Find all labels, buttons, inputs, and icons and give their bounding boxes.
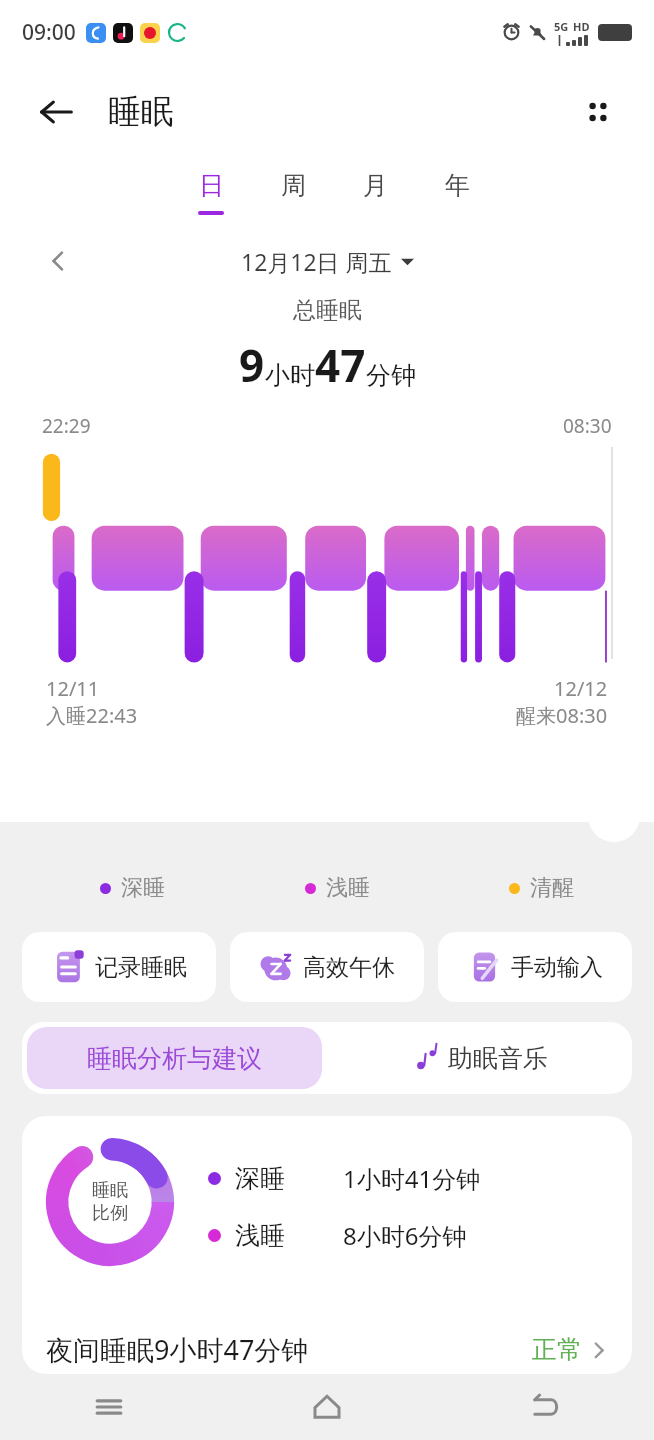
staticText: 正常 <box>532 1334 582 1365</box>
button[interactable]: 手动输入 <box>438 932 632 1002</box>
staticText: 睡眠 <box>92 1179 128 1202</box>
staticText: 助眠音乐 <box>448 1043 548 1074</box>
staticText: 深睡 <box>235 1163 285 1194</box>
staticText: 09:00 <box>22 18 76 47</box>
staticText: 月 <box>363 170 388 201</box>
button[interactable]: Recent apps <box>0 1374 218 1440</box>
button[interactable]: Home <box>218 1374 436 1440</box>
button[interactable]: More <box>588 790 640 842</box>
staticText: 12/11 <box>46 675 100 702</box>
staticText: 1小时41分钟 <box>343 1162 481 1195</box>
staticText: 记录睡眠 <box>95 953 187 982</box>
staticText: 9 <box>239 335 265 395</box>
button[interactable]: 月 <box>334 160 416 232</box>
button[interactable]: 睡眠 <box>22 1116 632 1374</box>
button[interactable]: Back <box>30 86 82 138</box>
button[interactable]: 睡眠分析与建议 <box>27 1027 322 1089</box>
staticText: 08:30 <box>563 413 612 439</box>
staticText: 总睡眠 <box>293 296 362 325</box>
staticText: 47 <box>315 335 366 395</box>
button[interactable]: 记录睡眠 <box>22 932 216 1002</box>
staticText: 比例 <box>92 1202 128 1225</box>
staticText: 5G <box>554 19 569 34</box>
staticText: 年 <box>445 170 470 201</box>
button[interactable]: 12月12日 周五 <box>241 246 414 277</box>
button[interactable]: 浅睡 <box>305 874 370 902</box>
staticText: 手动输入 <box>511 953 603 982</box>
button[interactable]: 日 <box>170 160 252 232</box>
button[interactable]: 助眠音乐 <box>327 1022 632 1094</box>
staticText: 高效午休 <box>303 953 395 982</box>
staticText: 睡眠 <box>108 91 174 133</box>
staticText: 12/12 <box>554 675 608 702</box>
staticText: 深睡 <box>121 874 165 902</box>
button[interactable]: 周 <box>252 160 334 232</box>
staticText: 12月12日 周五 <box>241 246 392 277</box>
button[interactable]: Back <box>436 1374 654 1440</box>
staticText: 周 <box>281 170 306 201</box>
button[interactable]: More options <box>572 86 624 138</box>
staticText: 8小时6分钟 <box>343 1219 467 1252</box>
staticText: 浅睡 <box>326 874 370 902</box>
staticText: HD <box>573 19 590 34</box>
staticText: 睡眠分析与建议 <box>87 1043 262 1074</box>
staticText: 小时 <box>265 360 315 391</box>
button[interactable]: 深睡 <box>100 874 165 902</box>
staticText: 日 <box>199 170 224 201</box>
button[interactable]: 年 <box>416 160 498 232</box>
staticText: 夜间睡眠9小时47分钟 <box>46 1331 309 1368</box>
button[interactable]: Previous day <box>36 239 80 283</box>
staticText: 22:29 <box>42 413 91 439</box>
staticText: 清醒 <box>530 874 574 902</box>
staticText: 入睡22:43 <box>46 702 138 729</box>
button[interactable]: 高效午休 <box>230 932 424 1002</box>
staticText: 醒来08:30 <box>516 702 608 729</box>
button[interactable]: 清醒 <box>509 874 574 902</box>
staticText: 浅睡 <box>235 1220 285 1251</box>
staticText: 分钟 <box>366 360 416 391</box>
